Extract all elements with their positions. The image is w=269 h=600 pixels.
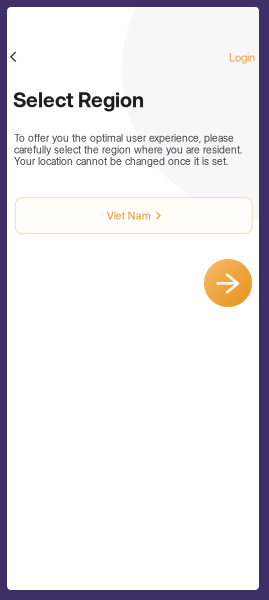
button[interactable]: Viet Nam xyxy=(15,198,252,234)
staticText: Select Region xyxy=(13,87,144,112)
staticText: carefully select the region where you ar… xyxy=(14,143,242,156)
button[interactable]: Back xyxy=(2,46,24,68)
button[interactable]: Login xyxy=(215,46,255,68)
staticText: Login xyxy=(229,50,255,64)
staticText: Viet Nam xyxy=(107,209,151,222)
staticText: Your location cannot be changed once it … xyxy=(14,155,228,167)
button[interactable]: Continue xyxy=(204,259,252,307)
staticText: To offer you the optimal user experience… xyxy=(14,132,234,144)
